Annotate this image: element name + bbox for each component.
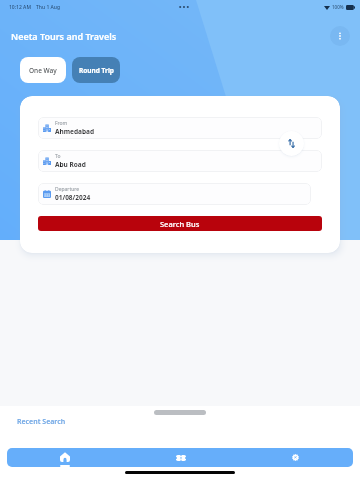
- staticText: To: [55, 153, 61, 160]
- staticText: Ahmedabad: [55, 127, 95, 136]
- staticText: From: [55, 120, 68, 127]
- staticText: Round Trip: [79, 66, 114, 75]
- button[interactable]: To: [38, 150, 322, 172]
- staticText: 100%: [332, 4, 344, 10]
- staticText: Thu 1 Aug: [36, 4, 61, 11]
- staticText: One Way: [29, 66, 57, 75]
- button[interactable]: Home: [7, 448, 123, 467]
- button[interactable]: Recent Search: [17, 417, 66, 427]
- button[interactable]: More options: [330, 26, 350, 46]
- staticText: Abu Road: [55, 160, 86, 169]
- button[interactable]: Search Bus: [38, 216, 322, 231]
- button[interactable]: Profile: [238, 448, 353, 467]
- staticText: Neeta Tours and Travels: [11, 30, 117, 42]
- staticText: 01/08/2024: [55, 193, 91, 202]
- staticText: 10:12 AM: [9, 4, 31, 11]
- staticText: Departure: [55, 186, 80, 193]
- button[interactable]: Bookings: [123, 448, 238, 467]
- staticText: Search Bus: [160, 219, 200, 229]
- button[interactable]: Departure: [38, 183, 311, 205]
- button[interactable]: From: [38, 117, 322, 139]
- button[interactable]: Swap from and to: [279, 131, 304, 156]
- button[interactable]: One Way: [20, 57, 66, 83]
- button[interactable]: Round Trip: [72, 57, 120, 83]
